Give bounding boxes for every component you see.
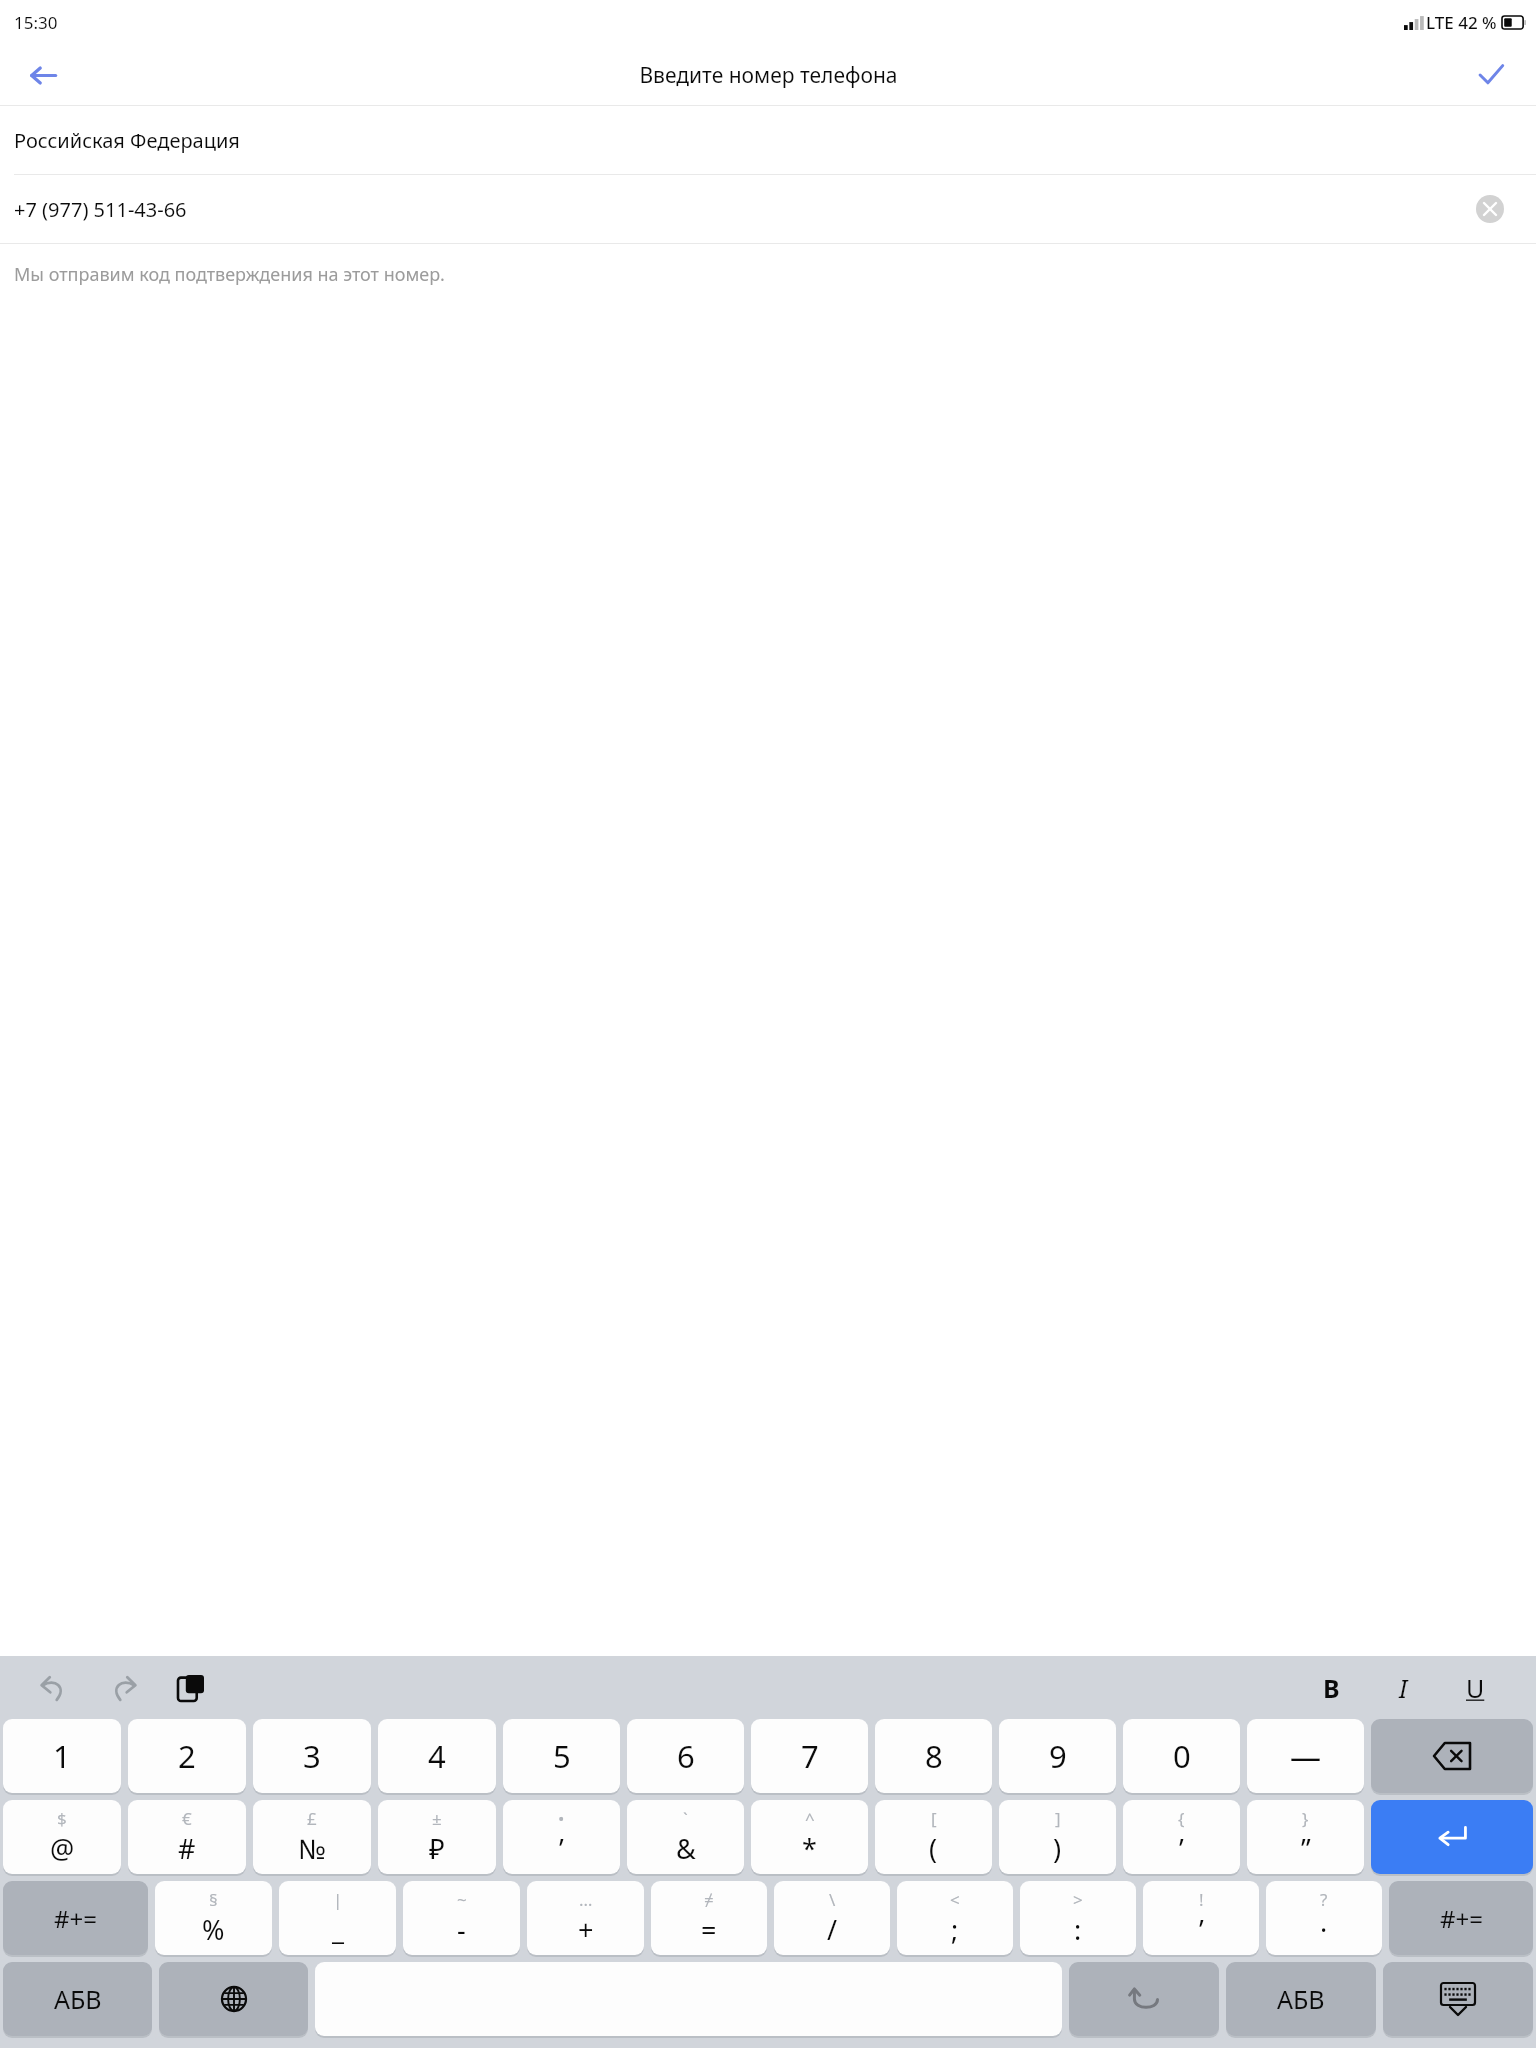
button[interactable]: { — [1123, 1800, 1240, 1874]
staticText: 9 — [1049, 1735, 1067, 1777]
button[interactable]: £ — [253, 1800, 371, 1874]
button[interactable]: #+= — [1389, 1881, 1533, 1955]
button[interactable] — [1383, 1962, 1533, 2036]
staticText: / — [827, 1911, 838, 1948]
button[interactable] — [1069, 1962, 1219, 2036]
staticText: \ — [829, 1888, 836, 1911]
button[interactable]: Back — [0, 45, 86, 105]
button[interactable]: Paste — [168, 1665, 214, 1711]
staticText: ’ — [1179, 1830, 1184, 1867]
staticText: № — [298, 1830, 326, 1867]
button[interactable]: Done — [1446, 45, 1536, 105]
staticText: 8 — [925, 1735, 943, 1777]
staticText: +7 (977) 511-43-66 — [14, 196, 187, 223]
button[interactable]: — — [1247, 1719, 1364, 1793]
button[interactable]: Undo — [30, 1665, 76, 1711]
staticText: • — [558, 1807, 565, 1830]
staticText: £ — [307, 1807, 317, 1830]
button[interactable]: Clear — [1476, 195, 1504, 223]
button[interactable] — [1371, 1800, 1533, 1874]
staticText: ₽ — [429, 1830, 445, 1867]
staticText: ≠ — [704, 1888, 714, 1911]
staticText: * — [802, 1830, 817, 1867]
button[interactable]: ] — [999, 1800, 1116, 1874]
button[interactable]: 1 — [3, 1719, 121, 1793]
button[interactable]: $ — [3, 1800, 121, 1874]
button[interactable]: 6 — [627, 1719, 744, 1793]
button[interactable]: U — [1452, 1665, 1498, 1711]
staticText: · — [1320, 1911, 1328, 1948]
staticText: > — [1073, 1888, 1083, 1911]
staticText: 1 — [53, 1735, 71, 1777]
button[interactable]: Российская Федерация — [0, 106, 1536, 174]
staticText: Мы отправим код подтверждения на этот но… — [14, 262, 445, 287]
staticText: #+= — [1440, 1902, 1483, 1935]
button[interactable]: 2 — [128, 1719, 246, 1793]
staticText: # — [178, 1830, 196, 1867]
staticText: % — [202, 1911, 225, 1948]
staticText: АБВ — [54, 1982, 102, 2016]
button[interactable]: Redo — [100, 1665, 146, 1711]
staticText: ( — [929, 1830, 938, 1867]
staticText: = — [701, 1911, 717, 1948]
staticText: : — [1074, 1911, 1082, 1948]
button[interactable]: ± — [378, 1800, 496, 1874]
button[interactable]: 9 — [999, 1719, 1116, 1793]
button[interactable]: АБВ — [1226, 1962, 1376, 2036]
staticText: ’ — [1199, 1911, 1204, 1948]
staticText: ^ — [805, 1807, 815, 1830]
button[interactable]: § — [155, 1881, 272, 1955]
button[interactable]: | — [279, 1881, 396, 1955]
button[interactable]: +7 (977) 511-43-66 — [0, 175, 1536, 243]
button[interactable]: 5 — [503, 1719, 620, 1793]
staticText: < — [950, 1888, 960, 1911]
staticText: B — [1323, 1671, 1340, 1705]
staticText: 0 — [1173, 1735, 1191, 1777]
button[interactable] — [1371, 1719, 1533, 1793]
staticText: 4 — [428, 1735, 446, 1777]
staticText: ~ — [457, 1888, 467, 1911]
button[interactable]: ` — [627, 1800, 744, 1874]
staticText: 15:30 — [14, 11, 58, 34]
staticText: $ — [57, 1807, 67, 1830]
button[interactable]: ≠ — [651, 1881, 767, 1955]
staticText: ! — [1199, 1888, 1204, 1911]
staticText: ± — [432, 1807, 442, 1830]
button[interactable]: B — [1308, 1665, 1354, 1711]
staticText: U — [1466, 1671, 1485, 1705]
button[interactable]: I — [1380, 1665, 1426, 1711]
staticText: _ — [332, 1911, 344, 1948]
button[interactable]: 7 — [751, 1719, 868, 1793]
button[interactable]: ~ — [403, 1881, 520, 1955]
staticText: ; — [951, 1911, 959, 1948]
button[interactable]: ? — [1266, 1881, 1382, 1955]
button[interactable]: • — [503, 1800, 620, 1874]
staticText: ` — [683, 1807, 688, 1830]
button[interactable]: 3 — [253, 1719, 371, 1793]
staticText: [ — [931, 1807, 937, 1830]
button[interactable]: ^ — [751, 1800, 868, 1874]
button[interactable]: } — [1247, 1800, 1364, 1874]
button[interactable]: АБВ — [3, 1962, 152, 2036]
staticText: LTE 42 % — [1426, 11, 1497, 34]
button[interactable]: > — [1020, 1881, 1136, 1955]
staticText: - — [457, 1911, 466, 1948]
staticText: ? — [1320, 1888, 1328, 1911]
staticText: ’ — [559, 1830, 564, 1867]
button[interactable]: 4 — [378, 1719, 496, 1793]
button[interactable]: … — [527, 1881, 644, 1955]
button[interactable]: #+= — [3, 1881, 148, 1955]
button[interactable]: \ — [774, 1881, 890, 1955]
staticText: Введите номер телефона — [639, 61, 898, 90]
button[interactable]: 8 — [875, 1719, 992, 1793]
staticText: ) — [1053, 1830, 1062, 1867]
button[interactable]: [ — [875, 1800, 992, 1874]
staticText: } — [1302, 1807, 1309, 1830]
button[interactable]: € — [128, 1800, 246, 1874]
button[interactable]: 0 — [1123, 1719, 1240, 1793]
button[interactable]: ! — [1143, 1881, 1259, 1955]
staticText: { — [1178, 1807, 1185, 1830]
button[interactable] — [159, 1962, 308, 2036]
button[interactable]: < — [897, 1881, 1013, 1955]
